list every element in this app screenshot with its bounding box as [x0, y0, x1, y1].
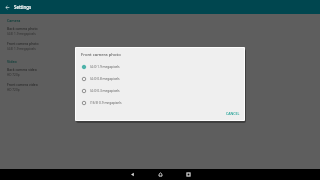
button[interactable]: Front camera video — [0, 79, 320, 94]
button[interactable]: CANCEL — [224, 109, 242, 117]
staticText: (4:3) 1.9 megapixels — [7, 32, 36, 36]
button[interactable]: Back — [1, 1, 13, 13]
staticText: (4:3) 0.3 megapixels — [90, 89, 120, 93]
staticText: (4:3) 0.8 megapixels — [90, 77, 120, 81]
staticText: Back camera photo — [7, 26, 38, 31]
button[interactable]: Front camera photo — [0, 38, 320, 53]
button[interactable]: (4:3) 1.9 megapixels — [75, 61, 245, 73]
button[interactable]: Home — [146, 169, 174, 180]
staticText: (4:3) 1.9 megapixels — [90, 65, 120, 69]
button[interactable]: Back camera video — [0, 64, 320, 79]
button[interactable]: (16:9) 0.9 megapixels — [75, 97, 245, 109]
staticText: Settings — [14, 4, 32, 10]
staticText: (16:9) 0.9 megapixels — [90, 101, 122, 105]
staticText: Front camera photo — [7, 41, 39, 46]
staticText: Video — [7, 59, 17, 64]
staticText: Front camera video — [7, 82, 38, 87]
staticText: Back camera video — [7, 67, 37, 72]
button[interactable]: Back — [118, 169, 146, 180]
staticText: (4:3) 1.9 megapixels — [7, 47, 36, 51]
button[interactable]: (4:3) 0.3 megapixels — [75, 85, 245, 97]
staticText: HD 720p — [7, 88, 20, 92]
staticText: CANCEL — [226, 111, 240, 116]
staticText: Camera — [7, 18, 21, 23]
staticText: Front camera photo — [81, 52, 121, 58]
button[interactable]: (4:3) 0.8 megapixels — [75, 73, 245, 85]
button[interactable]: Recent apps — [174, 169, 202, 180]
button[interactable]: Back camera photo — [0, 23, 320, 38]
staticText: HD 720p — [7, 73, 20, 77]
